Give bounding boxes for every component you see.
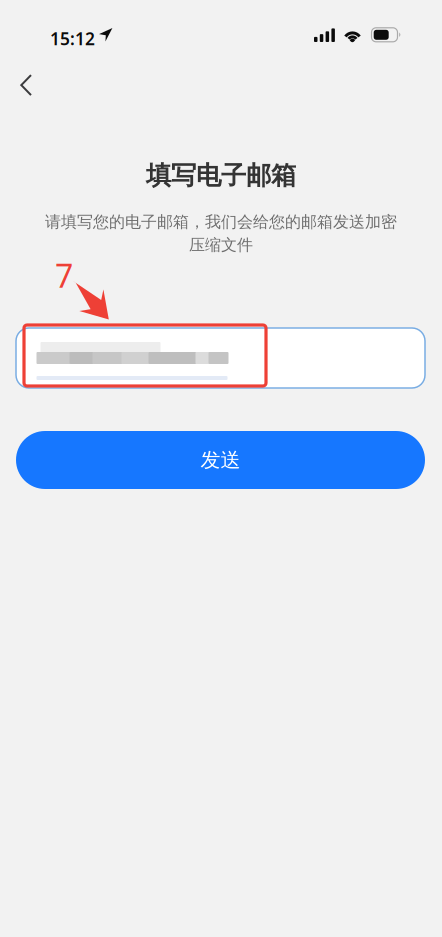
staticText: 7 [55, 254, 73, 296]
staticText: 填写电子邮箱 [146, 160, 296, 191]
button[interactable] [16, 328, 425, 388]
button[interactable]: 发送 [16, 431, 425, 489]
button[interactable]: Back [0, 62, 52, 110]
staticText: 请填写您的电子邮箱，我们会给您的邮箱发送加密 [45, 212, 397, 232]
staticText: 15:12 [50, 27, 95, 50]
staticText: 压缩文件 [189, 235, 253, 255]
staticText: 发送 [200, 448, 240, 472]
